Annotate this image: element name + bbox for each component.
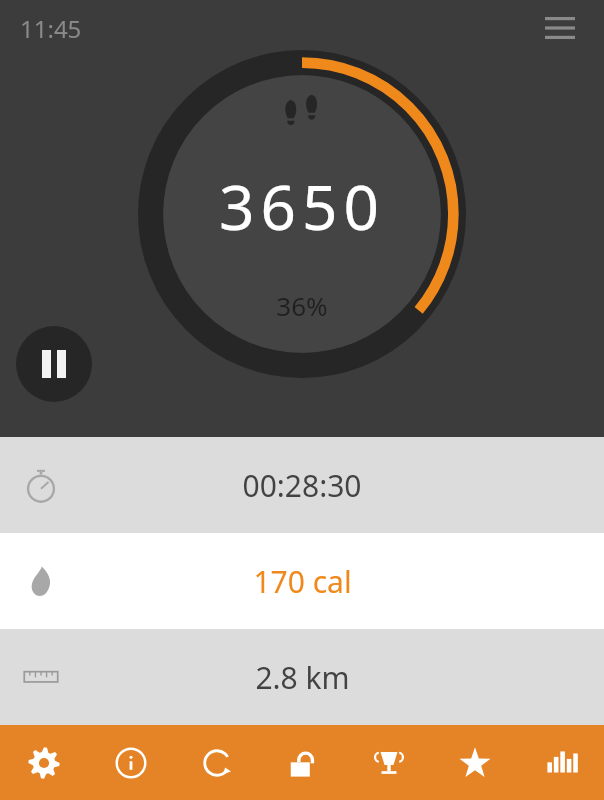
button[interactable]: Calories [0,533,604,629]
button[interactable]: Favorites [432,725,518,800]
button[interactable]: Pause [16,326,92,402]
staticText: 3650 [219,164,385,248]
button[interactable]: Statistics [518,725,604,800]
button[interactable]: Settings [0,725,87,800]
button[interactable]: Achievements [346,725,432,800]
staticText: 2.8 km [255,657,350,698]
button[interactable]: Menu [536,4,584,52]
button[interactable]: Distance [0,629,604,725]
button[interactable]: Lock [260,725,346,800]
staticText: 11:45 [20,12,82,45]
button[interactable]: Reset [174,725,260,800]
staticText: 00:28:30 [242,465,362,506]
staticText: 170 cal [253,561,352,602]
button[interactable]: Duration [0,437,604,533]
button[interactable]: Info [87,725,174,800]
staticText: 36% [276,288,328,323]
